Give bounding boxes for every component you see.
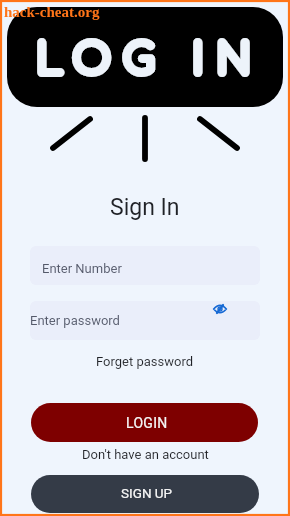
staticText: LOGIN <box>126 415 168 431</box>
button[interactable]: Enter password <box>30 301 260 340</box>
staticText: LOG IN <box>36 37 264 84</box>
staticText: Sign In <box>110 194 180 221</box>
button[interactable]: Enter Number <box>30 246 260 285</box>
button[interactable]: Forget password <box>92 352 198 371</box>
button[interactable]: LOGIN <box>31 403 258 442</box>
button[interactable]: Log In <box>7 7 283 107</box>
button[interactable]: Show password <box>209 301 231 320</box>
staticText: SIGN UP <box>121 485 173 501</box>
staticText: Enter password <box>30 313 120 328</box>
staticText: Enter Number <box>42 261 122 276</box>
staticText: hack-cheat.org <box>4 4 100 21</box>
button[interactable]: SIGN UP <box>31 475 259 513</box>
button[interactable]: Don't have an account <box>78 445 213 464</box>
